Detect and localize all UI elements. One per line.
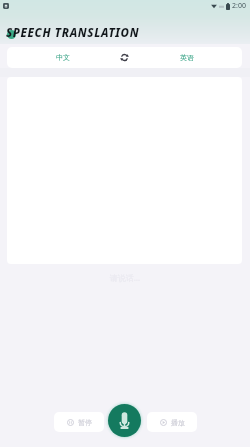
- button[interactable]: 中文: [7, 47, 117, 68]
- button[interactable]: 播放: [147, 412, 197, 432]
- staticText: 2:00: [232, 1, 246, 11]
- button[interactable]: Record voice: [108, 404, 141, 437]
- staticText: SPEECH TRANSLATION: [6, 25, 140, 41]
- staticText: 播放: [171, 418, 185, 427]
- staticText: 英语: [180, 53, 194, 62]
- button[interactable]: 暂停: [54, 412, 104, 432]
- button[interactable]: Swap languages: [117, 47, 131, 68]
- staticText: 暂停: [78, 418, 92, 427]
- button[interactable]: 英语: [131, 47, 242, 68]
- staticText: 中文: [56, 53, 70, 62]
